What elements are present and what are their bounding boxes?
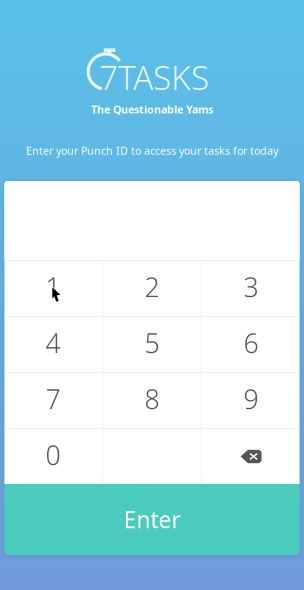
button[interactable]: Enter (4, 484, 299, 555)
button[interactable]: 7 (4, 373, 102, 428)
button[interactable]: 5 (103, 317, 201, 372)
staticText: The Questionable Yams (91, 102, 213, 116)
staticText: 7 (45, 381, 60, 417)
staticText: 2 (144, 269, 159, 305)
staticText: 0 (45, 437, 60, 473)
staticText: 3 (243, 269, 258, 305)
button[interactable]: 0 (4, 429, 102, 484)
button[interactable]: 8 (103, 373, 201, 428)
button[interactable]: 6 (202, 317, 300, 372)
staticText: Enter your Punch ID to access your tasks… (26, 143, 278, 158)
staticText: 9 (243, 381, 258, 417)
button[interactable]: 4 (4, 317, 102, 372)
staticText: 8 (144, 381, 159, 417)
staticText: Enter (123, 504, 180, 534)
button[interactable]: 9 (202, 373, 300, 428)
button[interactable]: Delete (202, 429, 300, 484)
staticText: 5 (144, 325, 159, 361)
staticText: 4 (45, 325, 60, 361)
staticText: 7TASKS (99, 55, 209, 99)
button[interactable]: 1 (4, 261, 102, 316)
button[interactable]: 3 (202, 261, 300, 316)
button[interactable]: 2 (103, 261, 201, 316)
staticText: 1 (45, 269, 60, 305)
staticText: 6 (243, 325, 258, 361)
